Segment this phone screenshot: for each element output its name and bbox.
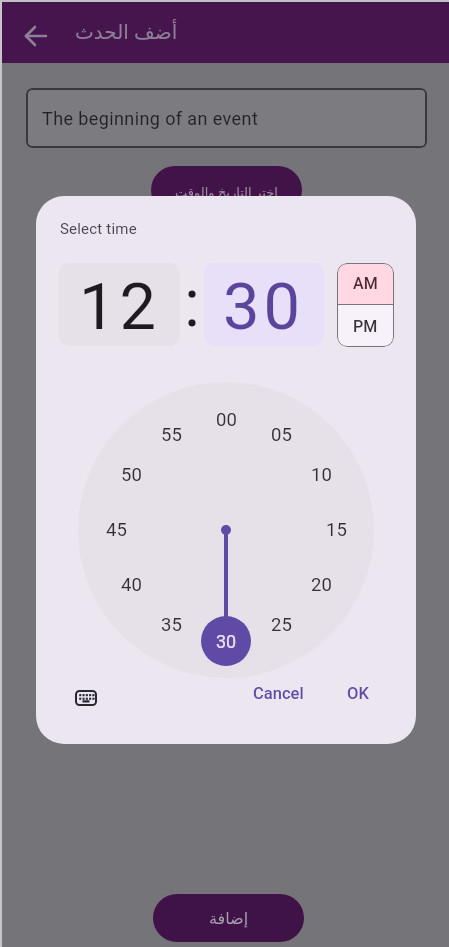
staticText: 40 <box>121 574 142 596</box>
staticText: إضافة <box>209 909 249 928</box>
button[interactable]: 20 <box>301 573 341 597</box>
staticText: PM <box>353 317 378 336</box>
button[interactable]: 30 <box>204 263 324 346</box>
staticText: اختر التاريخ والوقت <box>175 183 278 201</box>
staticText: Select time <box>60 220 137 238</box>
button[interactable]: 55 <box>151 423 191 447</box>
staticText: OK <box>347 684 369 703</box>
button[interactable] <box>16 16 56 56</box>
staticText: 25 <box>271 614 292 636</box>
staticText: 50 <box>121 464 142 486</box>
staticText: 10 <box>311 464 332 486</box>
button[interactable]: 35 <box>151 613 191 637</box>
button[interactable]: 15 <box>316 518 356 542</box>
button[interactable]: Cancel <box>242 669 314 717</box>
button[interactable]: 10 <box>301 463 341 487</box>
staticText: 20 <box>311 574 332 596</box>
staticText: 05 <box>271 424 292 446</box>
button[interactable]: 50 <box>111 463 151 487</box>
staticText: 55 <box>161 424 182 446</box>
button[interactable]: 05 <box>261 423 301 447</box>
staticText: 45 <box>106 519 127 541</box>
button[interactable] <box>62 674 110 722</box>
staticText: 00 <box>216 409 237 431</box>
button[interactable]: OK <box>330 669 386 717</box>
staticText: 30 <box>216 631 237 652</box>
staticText: 12 <box>79 269 161 345</box>
staticText: 30 <box>223 269 305 345</box>
button[interactable]: 25 <box>261 613 301 637</box>
staticText: The beginning of an event <box>42 108 259 129</box>
staticText: 15 <box>326 519 347 541</box>
button[interactable]: PM <box>337 305 394 347</box>
button[interactable]: AM <box>337 263 394 304</box>
staticText: 35 <box>161 614 182 636</box>
button[interactable]: اختر التاريخ والوقت <box>151 166 302 214</box>
staticText: : <box>184 265 200 342</box>
staticText: أضف الحدث <box>75 18 178 45</box>
staticText: Cancel <box>253 684 304 703</box>
button[interactable]: 45 <box>96 518 136 542</box>
button[interactable]: 12 <box>59 263 180 346</box>
button[interactable]: The beginning of an event <box>26 88 427 148</box>
button[interactable]: 40 <box>111 573 151 597</box>
staticText: AM <box>353 274 378 293</box>
button[interactable]: 00 <box>206 408 246 432</box>
button[interactable]: إضافة <box>153 894 304 942</box>
